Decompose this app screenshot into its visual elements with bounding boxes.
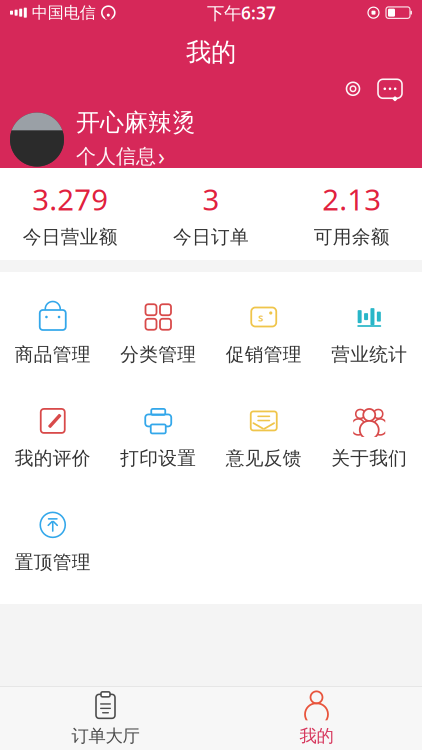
staticText: 意见反馈 xyxy=(226,447,302,470)
staticText: 下午6:37 xyxy=(207,1,276,24)
button[interactable]: 关于我们 xyxy=(316,398,422,476)
staticText: 个人信息 xyxy=(76,144,156,169)
staticText: 开心麻辣烫 xyxy=(76,108,196,137)
button[interactable]: 我的评价 xyxy=(0,398,105,476)
staticText: 促销管理 xyxy=(226,343,302,366)
button[interactable]: S xyxy=(211,294,316,372)
button[interactable]: 消息 xyxy=(376,76,404,102)
button[interactable]: 营业统计 xyxy=(316,294,422,372)
staticText: 我的 xyxy=(186,37,236,68)
button[interactable]: 商品管理 xyxy=(0,294,105,372)
staticText: 中国电信 xyxy=(32,3,96,22)
button[interactable]: 分类管理 xyxy=(105,294,211,372)
button[interactable]: 置顶管理 xyxy=(0,502,105,580)
staticText: 营业统计 xyxy=(331,343,407,366)
staticText: 分类管理 xyxy=(120,343,196,366)
staticText: 可用余额 xyxy=(314,225,390,248)
staticText: 今日营业额 xyxy=(23,225,118,248)
staticText: 关于我们 xyxy=(331,447,407,470)
staticText: 3.279 xyxy=(32,180,108,219)
staticText: 3 xyxy=(202,180,219,219)
staticText: 置顶管理 xyxy=(15,551,91,574)
staticText: 订单大厅 xyxy=(71,725,139,747)
staticText: 2.13 xyxy=(322,180,381,219)
staticText: 我的评价 xyxy=(15,447,91,470)
button[interactable]: 设置 xyxy=(340,76,366,102)
staticText: 今日订单 xyxy=(173,225,249,248)
button[interactable]: 订单大厅 xyxy=(0,683,211,750)
button[interactable]: 我的 xyxy=(211,683,422,750)
staticText: 我的 xyxy=(299,725,333,747)
staticText: 商品管理 xyxy=(15,343,91,366)
button[interactable]: 意见反馈 xyxy=(211,398,316,476)
button[interactable]: 开心麻辣烫 xyxy=(0,102,422,171)
button[interactable]: 打印设置 xyxy=(105,398,211,476)
staticText: 打印设置 xyxy=(120,447,196,470)
staticText: › xyxy=(158,141,165,171)
staticText: S xyxy=(258,312,263,324)
